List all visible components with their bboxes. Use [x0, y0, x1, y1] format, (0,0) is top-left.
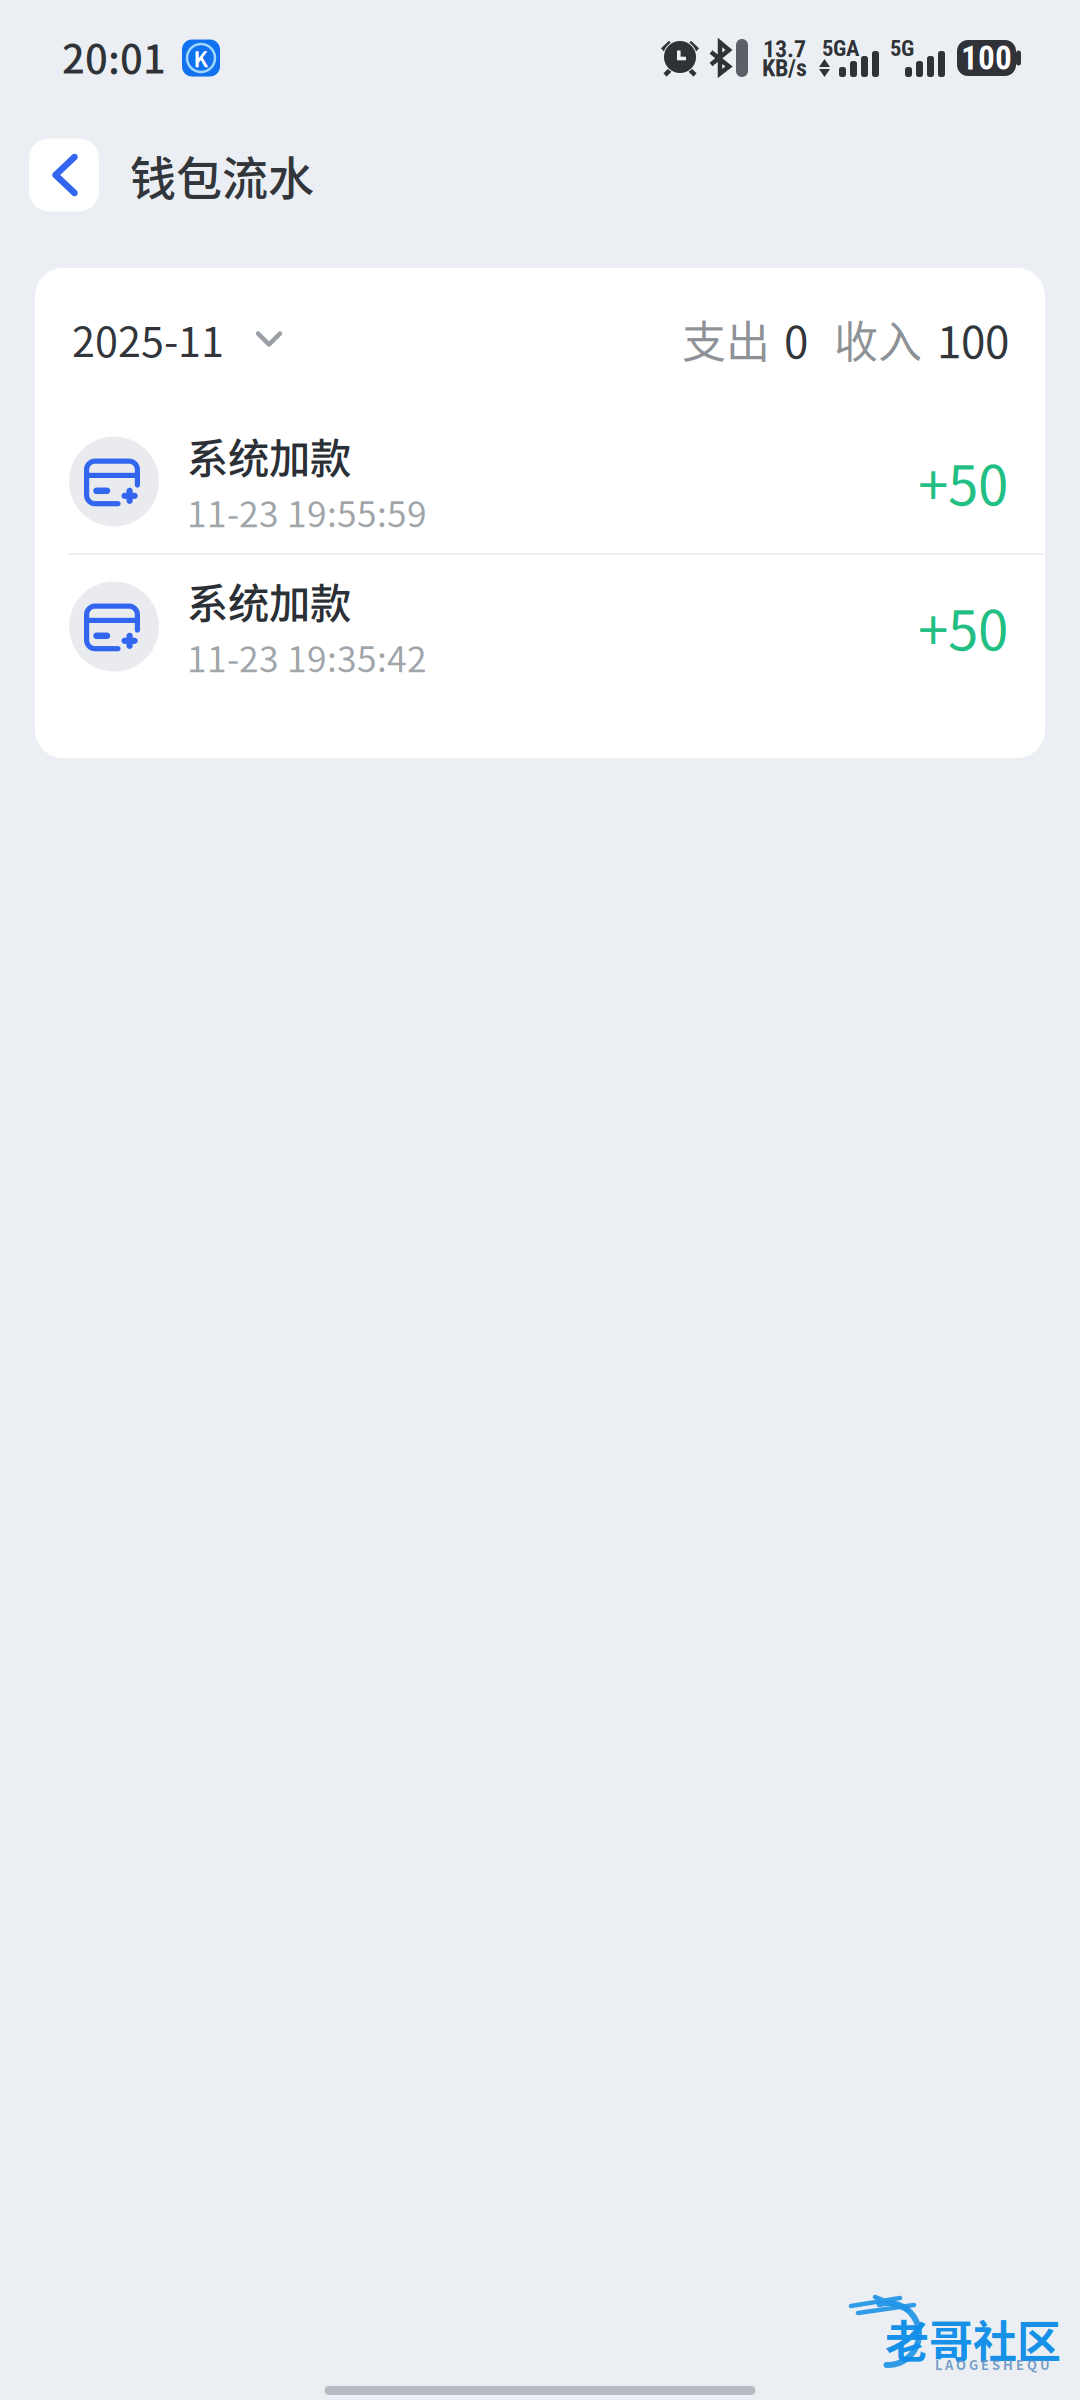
staticText: 2025-11 [72, 309, 224, 369]
staticText: 13.7 [763, 35, 806, 63]
button[interactable]: Back [29, 138, 99, 211]
button[interactable]: 系统加款 [35, 410, 1045, 553]
staticText: 11-23 19:35:42 [187, 631, 427, 682]
staticText: 老哥社区 [885, 2307, 1061, 2371]
staticText: 5G [890, 35, 914, 62]
staticText: 5GA [822, 35, 860, 62]
button[interactable]: 系统加款 [35, 555, 1045, 698]
staticText: 20:01 [62, 27, 166, 85]
staticText: +50 [918, 587, 1008, 666]
staticText: 系统加款 [187, 570, 351, 630]
staticText: K [193, 43, 208, 73]
staticText: 100 [961, 38, 1012, 78]
staticText: 100 [937, 307, 1009, 371]
staticText: 收入 [834, 307, 922, 371]
staticText: 钱包流水 [130, 142, 314, 208]
staticText: 系统加款 [187, 425, 351, 485]
staticText: KB/s [762, 54, 807, 82]
staticText: 11-23 19:55:59 [187, 486, 427, 537]
staticText: L A O G E S H E Q U [935, 2355, 1050, 2374]
staticText: 支出 [682, 307, 770, 371]
staticText: 0 [784, 307, 808, 371]
button[interactable]: 2025-11 [72, 294, 282, 384]
staticText: +50 [918, 442, 1008, 521]
